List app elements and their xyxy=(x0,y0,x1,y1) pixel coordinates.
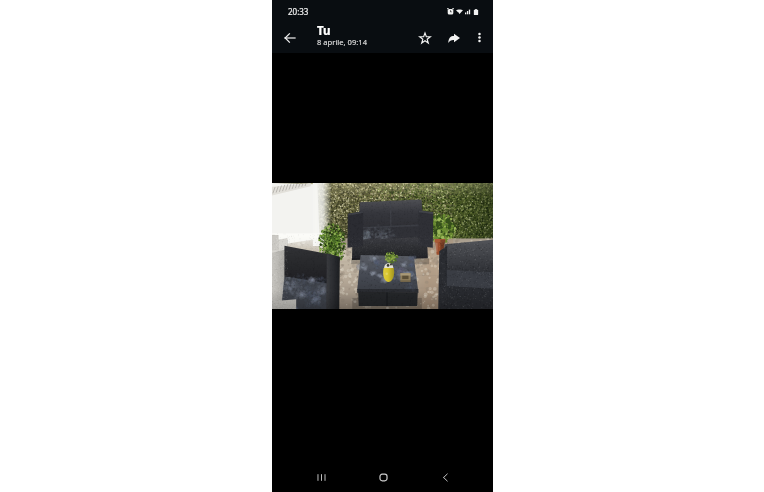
button[interactable]: Back xyxy=(279,27,300,48)
button[interactable]: Home xyxy=(371,465,395,489)
staticText: 20:33 xyxy=(288,6,309,17)
staticText: 8 aprile, 09:14 xyxy=(317,37,368,47)
button[interactable]: Favourite xyxy=(413,26,436,49)
button[interactable]: Share xyxy=(442,26,465,49)
button[interactable]: More options xyxy=(468,26,491,49)
staticText: Tu xyxy=(317,23,331,39)
button[interactable]: Back xyxy=(433,465,457,489)
button[interactable]: Recent apps xyxy=(309,465,333,489)
